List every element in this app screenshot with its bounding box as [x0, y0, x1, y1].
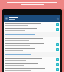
button[interactable]: Open item — [56, 23, 59, 26]
button[interactable]: Open item — [56, 58, 59, 61]
button[interactable]: Open item — [4, 67, 60, 72]
button[interactable]: Open item — [56, 68, 59, 71]
button[interactable]: Open item — [4, 47, 60, 52]
button[interactable]: Open item — [4, 57, 60, 62]
button[interactable]: Open item — [4, 62, 60, 67]
button[interactable]: Open item — [56, 63, 59, 66]
button[interactable] — [4, 37, 60, 42]
button[interactable]: Search — [57, 18, 59, 20]
button[interactable]: Open item — [4, 27, 60, 32]
button[interactable]: Open item — [4, 22, 60, 27]
button[interactable]: Open item — [56, 48, 59, 51]
button[interactable]: Menu — [5, 17, 8, 20]
button[interactable]: Open item — [4, 42, 60, 47]
button[interactable]: Open item — [56, 43, 59, 46]
button[interactable]: Open item — [56, 28, 59, 31]
